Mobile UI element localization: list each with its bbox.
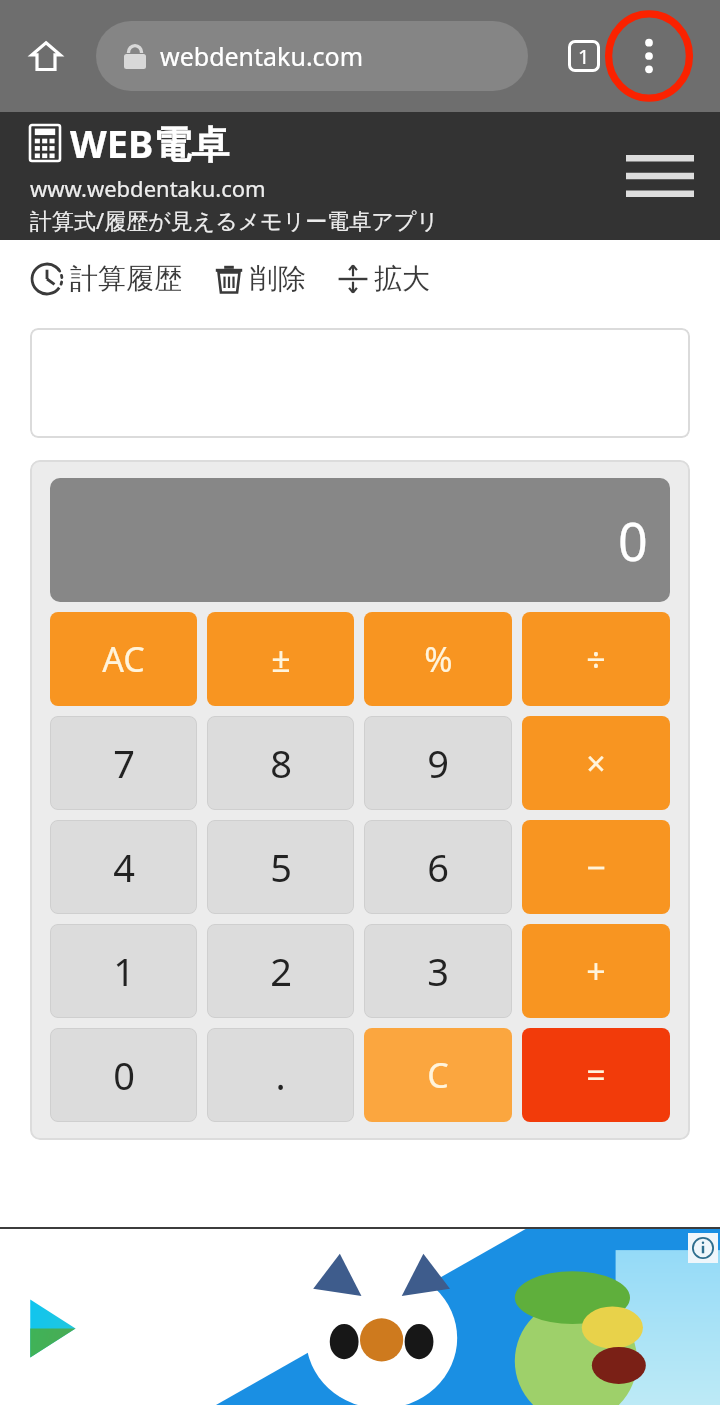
staticText: 計算履歴 [70, 261, 182, 296]
staticText: ÷ [586, 636, 606, 682]
button[interactable]: 2 [207, 924, 354, 1018]
staticText: = [586, 1052, 606, 1098]
staticText: WEB電卓 [70, 117, 230, 169]
button[interactable]: 4 [50, 820, 197, 914]
button[interactable]: 9 [364, 716, 512, 810]
button[interactable]: + [522, 924, 670, 1018]
button[interactable]: Home [18, 28, 74, 84]
staticText: 9 [427, 737, 449, 789]
button[interactable]: 6 [364, 820, 512, 914]
staticText: 8 [270, 737, 292, 789]
staticText: − [586, 844, 606, 890]
button[interactable]: 3 [364, 924, 512, 1018]
button[interactable]: − [522, 820, 670, 914]
button[interactable]: C [364, 1028, 512, 1122]
button[interactable]: More options [606, 13, 692, 99]
button[interactable]: AC [50, 612, 197, 706]
staticText: AC [102, 636, 145, 682]
staticText: www.webdentaku.com [30, 173, 266, 203]
staticText: % [424, 636, 453, 682]
button[interactable]: Advertisement [0, 1229, 720, 1405]
staticText: 4 [113, 841, 135, 893]
button[interactable]: 0 [50, 1028, 197, 1122]
button[interactable]: Menu [620, 136, 700, 216]
button[interactable] [30, 328, 690, 438]
staticText: 5 [270, 841, 292, 893]
staticText: 削除 [250, 261, 306, 296]
button[interactable]: % [364, 612, 512, 706]
staticText: + [586, 948, 606, 994]
button[interactable]: 拡大 [338, 261, 434, 296]
button[interactable]: 8 [207, 716, 354, 810]
staticText: webdentaku.com [160, 39, 364, 73]
button[interactable]: 7 [50, 716, 197, 810]
staticText: C [427, 1052, 449, 1098]
staticText: 1 [113, 945, 135, 997]
button[interactable]: 削除 [214, 261, 310, 296]
staticText: ± [271, 636, 291, 682]
button[interactable]: × [522, 716, 670, 810]
staticText: 6 [427, 841, 449, 893]
staticText: . [275, 1049, 286, 1101]
staticText: × [586, 740, 606, 786]
button[interactable]: . [207, 1028, 354, 1122]
button[interactable]: ÷ [522, 612, 670, 706]
staticText: 7 [113, 737, 135, 789]
staticText: 0 [618, 505, 648, 576]
button[interactable]: = [522, 1028, 670, 1122]
button[interactable]: Tabs [558, 30, 610, 82]
button[interactable]: 計算履歴 [30, 261, 186, 296]
staticText: 1 [578, 43, 590, 70]
button[interactable]: 5 [207, 820, 354, 914]
button[interactable]: ± [207, 612, 354, 706]
staticText: 2 [270, 945, 292, 997]
staticText: 拡大 [374, 261, 430, 296]
staticText: 0 [113, 1049, 135, 1101]
button[interactable]: webdentaku.com [96, 21, 528, 91]
staticText: 3 [427, 945, 449, 997]
button[interactable]: Ad choices info [688, 1233, 718, 1263]
staticText: 計算式/履歴が見えるメモリー電卓アプリ [30, 205, 439, 235]
button[interactable]: 1 [50, 924, 197, 1018]
